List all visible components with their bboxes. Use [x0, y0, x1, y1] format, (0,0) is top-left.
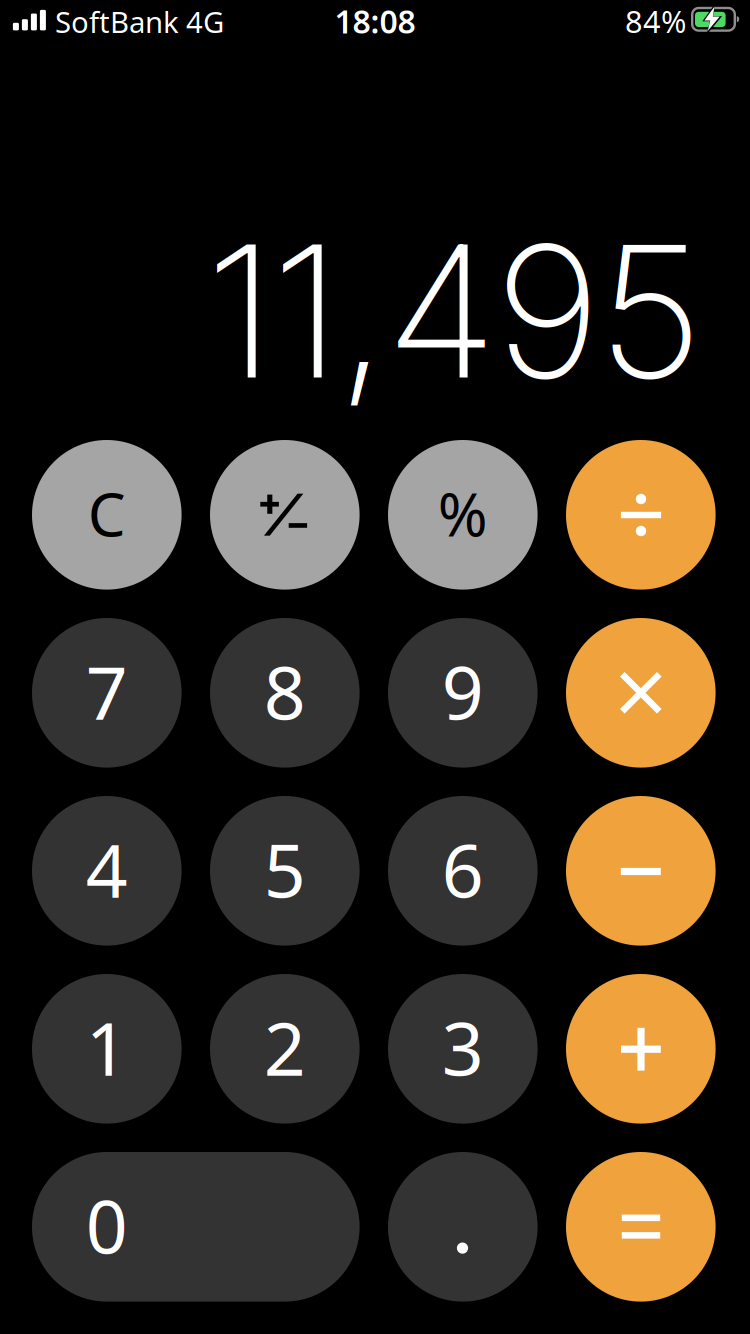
button[interactable]: 5	[210, 796, 360, 946]
button[interactable]: 7	[32, 618, 182, 768]
button[interactable]: Plus	[566, 974, 716, 1124]
staticText: 4G	[186, 2, 224, 41]
button[interactable]: Decimal point	[388, 1152, 538, 1302]
staticText: 11,495	[207, 200, 701, 421]
button[interactable]: C	[32, 440, 182, 590]
button[interactable]: 4	[32, 796, 182, 946]
button[interactable]: 9	[388, 618, 538, 768]
button[interactable]: Equals	[566, 1152, 716, 1302]
staticText: 84%	[625, 1, 686, 41]
staticText: 18:08	[334, 0, 415, 42]
button[interactable]: 0	[32, 1152, 360, 1302]
button[interactable]: Divide	[566, 440, 716, 590]
button[interactable]: Minus	[566, 796, 716, 946]
button[interactable]: 3	[388, 974, 538, 1124]
staticText: 3	[442, 999, 484, 1096]
staticText: 0	[86, 1177, 128, 1274]
staticText: 4	[86, 821, 128, 918]
staticText: 6	[442, 821, 484, 918]
staticText: 8	[264, 643, 306, 740]
button[interactable]: 1	[32, 974, 182, 1124]
staticText: C	[88, 473, 126, 553]
staticText: 9	[442, 643, 484, 740]
button[interactable]: 8	[210, 618, 360, 768]
button[interactable]: Plus minus	[210, 440, 360, 590]
staticText: 1	[86, 999, 128, 1096]
staticText: 7	[86, 643, 128, 740]
staticText: 2	[264, 999, 306, 1096]
staticText: %	[438, 473, 488, 553]
staticText: 5	[264, 821, 306, 918]
button[interactable]: 6	[388, 796, 538, 946]
button[interactable]: Multiply	[566, 618, 716, 768]
button[interactable]: 2	[210, 974, 360, 1124]
staticText: SoftBank	[55, 2, 179, 41]
button[interactable]: %	[388, 440, 538, 590]
